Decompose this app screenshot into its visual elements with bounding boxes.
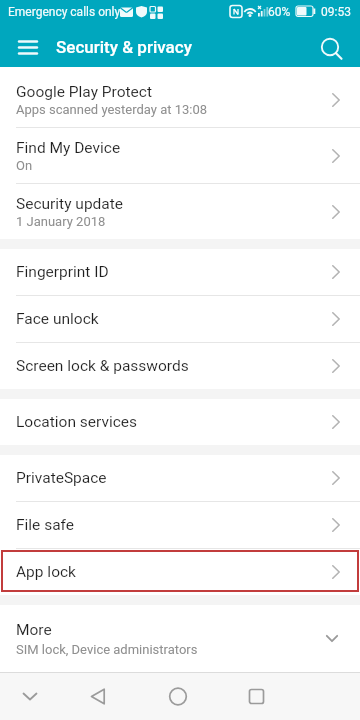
button[interactable] — [180, 673, 270, 720]
button[interactable]: App lock — [0, 549, 360, 595]
button[interactable] — [312, 24, 352, 67]
button[interactable]: File safe — [0, 502, 360, 548]
staticText: Find My Device — [16, 139, 121, 157]
button[interactable] — [0, 673, 90, 720]
staticText: 60% — [268, 5, 291, 19]
button[interactable]: More — [0, 605, 360, 672]
staticText: SIM lock, Device administrators — [16, 642, 198, 657]
staticText: Face unlock — [16, 310, 99, 328]
button[interactable]: Face unlock — [0, 296, 360, 342]
button[interactable]: Fingerprint ID — [0, 249, 360, 295]
staticText: Security & privacy — [56, 37, 192, 57]
staticText: Apps scanned yesterday at 13:08 — [16, 102, 208, 117]
button[interactable] — [8, 24, 48, 67]
staticText: Google Play Protect — [16, 83, 153, 101]
staticText: Screen lock & passwords — [16, 357, 189, 375]
staticText: On — [16, 158, 33, 173]
button[interactable]: Security update — [0, 184, 360, 239]
button[interactable]: PrivateSpace — [0, 455, 360, 501]
staticText: Emergency calls only — [8, 5, 121, 19]
staticText: Fingerprint ID — [16, 263, 109, 281]
staticText: Security update — [16, 195, 124, 213]
button[interactable] — [90, 673, 180, 720]
staticText: More — [16, 621, 52, 639]
staticText: 1 January 2018 — [16, 214, 106, 229]
staticText: PrivateSpace — [16, 469, 107, 487]
button[interactable]: Screen lock & passwords — [0, 343, 360, 389]
staticText: Location services — [16, 413, 138, 431]
staticText: App lock — [16, 563, 76, 581]
button[interactable]: Google Play Protect — [0, 72, 360, 127]
staticText: 09:53 — [321, 5, 351, 19]
button[interactable]: Location services — [0, 399, 360, 445]
staticText: File safe — [16, 516, 75, 534]
button[interactable]: Find My Device — [0, 128, 360, 183]
